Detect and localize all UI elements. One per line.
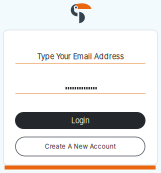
button[interactable]: Create A New Account: [15, 137, 145, 156]
button[interactable]: Login: [15, 112, 145, 129]
staticText: Login: [71, 116, 89, 125]
staticText: Type Your Email Address: [37, 52, 124, 61]
staticText: Create A New Account: [45, 143, 116, 150]
